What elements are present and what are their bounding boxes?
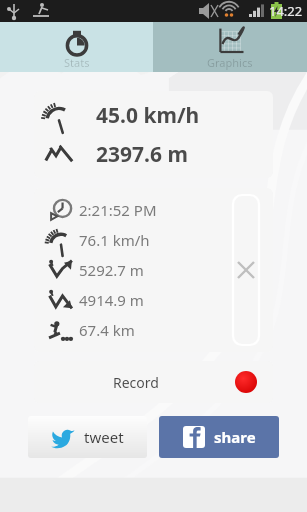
staticText: 5292.7 m [79, 260, 144, 280]
staticText: Record [113, 373, 159, 392]
button[interactable]: Record [34, 361, 273, 403]
button[interactable]: tweet [28, 416, 147, 458]
staticText: 4914.9 m [79, 290, 144, 310]
button[interactable]: Graphics [153, 22, 307, 72]
button[interactable]: Reset [233, 195, 259, 345]
staticText: 14:22 [269, 2, 303, 20]
staticText: 45.0 km/h [96, 101, 200, 130]
staticText: 2397.6 m [96, 140, 188, 169]
staticText: Graphics [207, 55, 253, 70]
staticText: share [214, 427, 256, 447]
button[interactable]: Stats [0, 22, 153, 72]
button[interactable]: 45.0 km/h [34, 91, 273, 178]
button[interactable]: share [159, 416, 279, 458]
staticText: Stats [64, 55, 90, 70]
staticText: 76.1 km/h [79, 230, 150, 250]
staticText: tweet [84, 427, 124, 447]
staticText: 2:21:52 PM [79, 200, 157, 220]
staticText: 67.4 km [79, 320, 135, 340]
